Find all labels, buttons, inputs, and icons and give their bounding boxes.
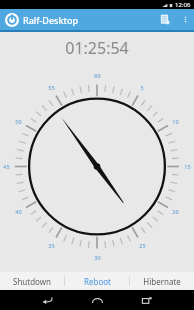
button[interactable]: Back <box>25 290 69 310</box>
staticText: 50 <box>15 118 22 125</box>
staticText: 45 <box>3 163 10 170</box>
staticText: 12:06 <box>175 1 191 9</box>
staticText: 10 <box>172 118 179 125</box>
staticText: 5 <box>140 84 144 91</box>
staticText: Ralf-Desktop <box>23 14 79 26</box>
button[interactable]: Home <box>75 290 119 310</box>
button[interactable]: Hibernate <box>130 272 194 290</box>
button[interactable]: Shutdown <box>0 272 64 290</box>
staticText: 55 <box>48 84 55 91</box>
staticText: 35 <box>48 242 55 249</box>
staticText: 15 <box>184 163 191 170</box>
staticText: 30 <box>94 254 101 261</box>
button[interactable]: More options <box>177 9 194 30</box>
staticText: 01:25:54 <box>65 37 129 59</box>
button[interactable]: Ralf-Desktop app icon, navigate up <box>2 10 21 29</box>
staticText: 60 <box>94 72 101 79</box>
staticText: Hibernate <box>143 276 181 287</box>
staticText: Shutdown <box>13 276 51 287</box>
staticText: 40 <box>15 208 22 215</box>
staticText: 20 <box>172 208 179 215</box>
button[interactable]: Task list <box>153 9 177 30</box>
button[interactable]: Reboot <box>65 272 129 290</box>
staticText: Reboot <box>84 276 111 287</box>
staticText: 25 <box>139 242 146 249</box>
button[interactable]: Recent apps <box>125 290 169 310</box>
